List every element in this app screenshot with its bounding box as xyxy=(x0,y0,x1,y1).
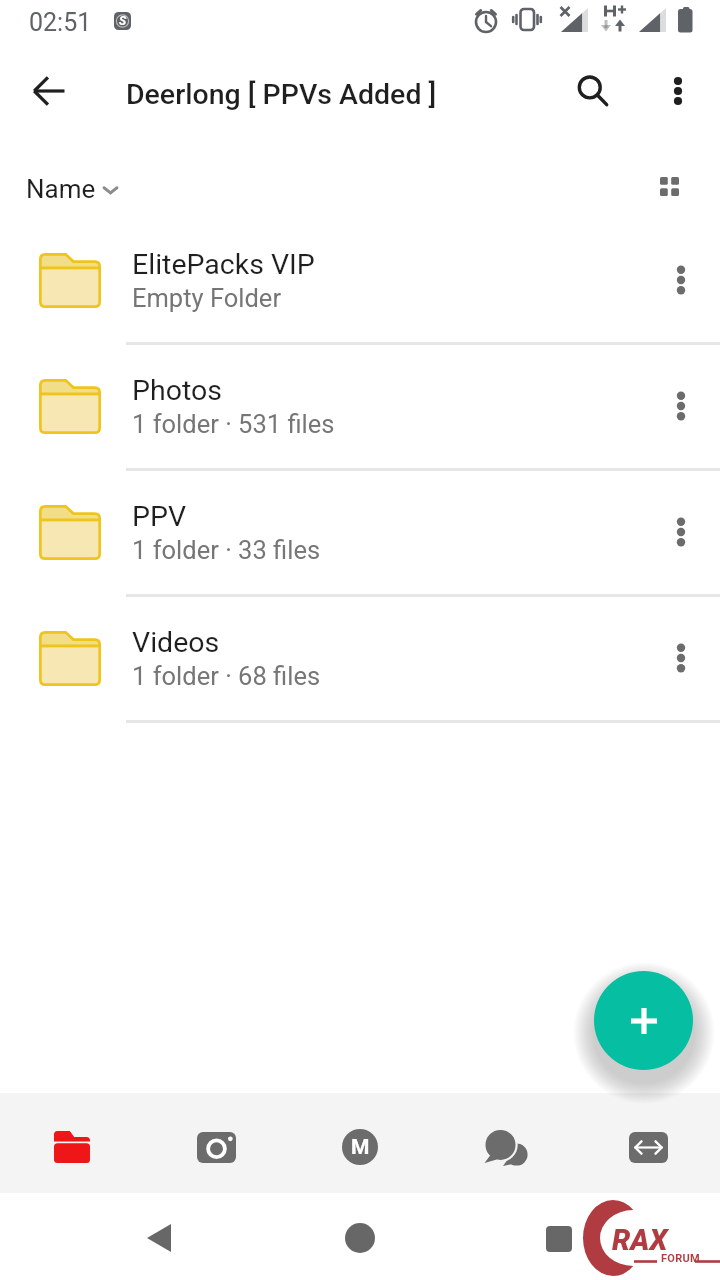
button[interactable]: Search xyxy=(562,60,624,122)
staticText: Deerlong [ PPVs Added ] xyxy=(126,78,437,111)
staticText: Name xyxy=(26,174,96,204)
button[interactable]: Videos xyxy=(0,595,720,721)
button[interactable]: Back xyxy=(124,1203,194,1273)
button[interactable]: Item options xyxy=(638,595,720,721)
staticText: 1 folder · 531 files xyxy=(132,409,335,439)
staticText: Empty Folder xyxy=(132,283,282,313)
button[interactable]: Photos xyxy=(0,343,720,469)
button[interactable]: Name xyxy=(17,168,128,210)
staticText: M xyxy=(351,1135,370,1160)
button[interactable]: Cloud drive xyxy=(0,1093,144,1193)
button[interactable]: Home xyxy=(325,1203,395,1273)
staticText: 1 folder · 68 files xyxy=(132,661,321,691)
staticText: Photos xyxy=(132,374,222,407)
button[interactable]: ElitePacks VIP xyxy=(0,217,720,343)
button[interactable]: Add xyxy=(594,971,693,1070)
staticText: ElitePacks VIP xyxy=(132,248,315,281)
button[interactable]: Item options xyxy=(638,343,720,469)
button[interactable]: Item options xyxy=(638,469,720,595)
staticText: RAX xyxy=(612,1223,668,1257)
staticText: PPV xyxy=(132,500,187,533)
button[interactable]: Grid view xyxy=(641,158,697,214)
button[interactable]: Home xyxy=(288,1093,432,1193)
button[interactable]: PPV xyxy=(0,469,720,595)
button[interactable]: Chat xyxy=(432,1093,576,1193)
staticText: Videos xyxy=(132,626,220,659)
button[interactable]: Back xyxy=(16,58,82,124)
staticText: FORUM xyxy=(661,1252,701,1265)
button[interactable]: Camera uploads xyxy=(144,1093,288,1193)
button[interactable]: Item options xyxy=(638,217,720,343)
button[interactable]: Recents xyxy=(524,1204,594,1274)
staticText: 1 folder · 33 files xyxy=(132,535,321,565)
button[interactable]: Transfers xyxy=(576,1093,720,1193)
staticText: S xyxy=(119,14,127,28)
staticText: 02:51 xyxy=(29,8,92,37)
button[interactable]: More options xyxy=(647,60,709,122)
